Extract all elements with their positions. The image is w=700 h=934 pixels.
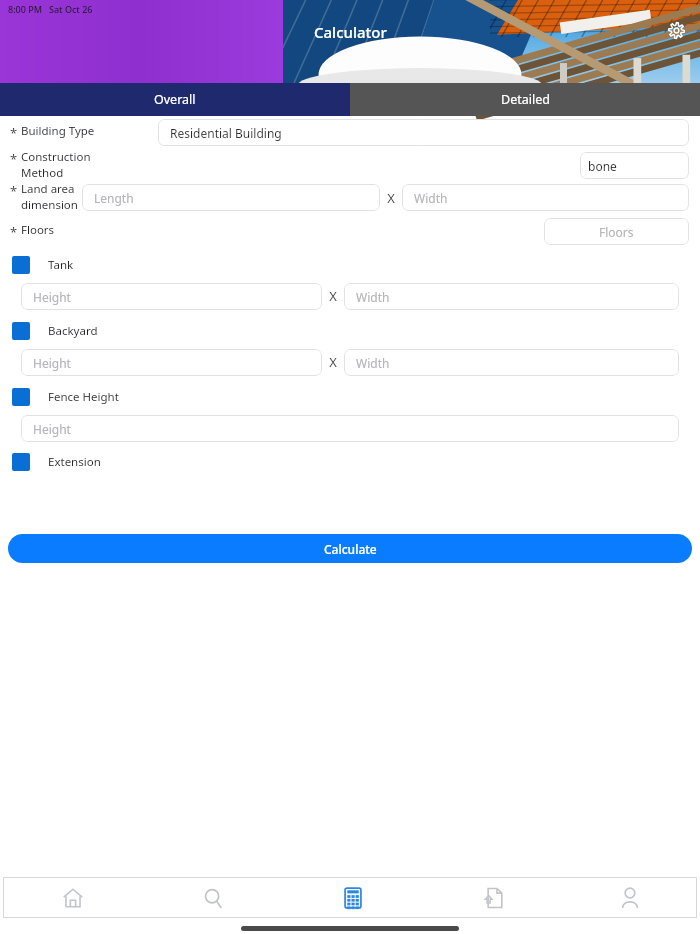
button[interactable]: Width bbox=[402, 184, 689, 211]
button[interactable]: Length bbox=[82, 184, 380, 211]
staticText: Length bbox=[94, 190, 134, 206]
button[interactable]: Settings bbox=[664, 18, 688, 42]
button[interactable]: Residential Building bbox=[158, 119, 689, 146]
staticText: dimensions bbox=[21, 197, 82, 214]
staticText: Backyard bbox=[48, 323, 98, 339]
button[interactable]: Profile bbox=[563, 877, 697, 918]
button[interactable]: Extension bbox=[0, 449, 700, 475]
button[interactable]: bone bbox=[580, 152, 689, 179]
staticText: Extension bbox=[48, 454, 101, 470]
staticText: Land area bbox=[21, 181, 75, 197]
staticText: Height bbox=[33, 421, 71, 437]
staticText: Height bbox=[33, 355, 71, 371]
button[interactable]: Width bbox=[344, 283, 679, 310]
staticText: Floors bbox=[21, 222, 55, 238]
staticText: Calculator bbox=[314, 22, 387, 42]
button[interactable]: Backyard bbox=[0, 318, 700, 344]
button[interactable]: Calculator bbox=[283, 877, 423, 918]
staticText: 8:00 PM Sat Oct 26 bbox=[8, 3, 93, 15]
staticText: Tank bbox=[48, 257, 74, 273]
button[interactable]: Home bbox=[3, 877, 143, 918]
button[interactable]: Tank bbox=[0, 252, 700, 278]
staticText: Building Type bbox=[21, 123, 95, 139]
staticText: Fence Height bbox=[48, 389, 119, 405]
staticText: * bbox=[10, 182, 18, 200]
button[interactable]: Overall bbox=[0, 83, 350, 116]
button[interactable]: Width bbox=[344, 349, 679, 376]
staticText: Overall bbox=[154, 91, 196, 108]
button[interactable]: Height bbox=[21, 415, 679, 442]
staticText: Width bbox=[356, 355, 390, 371]
button[interactable]: Calculate bbox=[8, 534, 692, 563]
staticText: Width bbox=[414, 190, 448, 206]
staticText: X bbox=[322, 287, 344, 305]
staticText: Height bbox=[33, 289, 71, 305]
button[interactable]: Upload document bbox=[423, 877, 563, 918]
button[interactable]: Detailed bbox=[350, 83, 700, 116]
button[interactable]: Fence Height bbox=[0, 384, 700, 410]
staticText: Floors bbox=[599, 224, 634, 240]
staticText: Method bbox=[21, 165, 64, 181]
button[interactable]: Floors bbox=[544, 218, 689, 245]
staticText: Construction bbox=[21, 149, 91, 165]
staticText: bone bbox=[588, 158, 617, 174]
staticText: * bbox=[10, 150, 18, 168]
button[interactable]: Height bbox=[21, 349, 322, 376]
staticText: Detailed bbox=[501, 91, 550, 108]
staticText: X bbox=[380, 189, 402, 207]
staticText: Residential Building bbox=[170, 125, 282, 141]
staticText: Width bbox=[356, 289, 390, 305]
button[interactable]: Height bbox=[21, 283, 322, 310]
staticText: * bbox=[10, 223, 18, 241]
staticText: X bbox=[322, 353, 344, 371]
staticText: * bbox=[10, 124, 18, 142]
staticText: Calculate bbox=[324, 541, 377, 557]
button[interactable]: Search bbox=[143, 877, 283, 918]
